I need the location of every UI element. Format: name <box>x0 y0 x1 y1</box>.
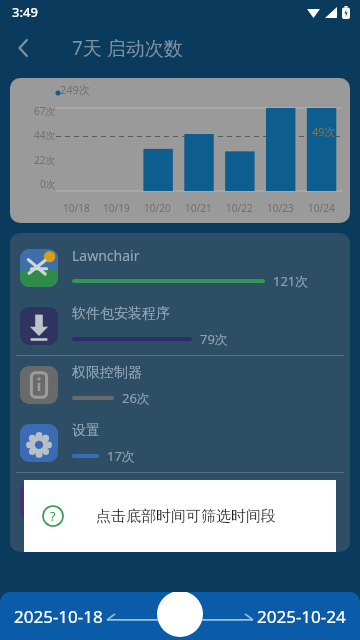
staticText: 249次 <box>60 82 90 97</box>
button[interactable]: 设置 <box>10 414 350 472</box>
staticText: 10/23 <box>267 201 294 215</box>
staticText: 7天 启动次数 <box>72 35 183 61</box>
staticText: 79次 <box>200 330 228 348</box>
staticText: 10/22 <box>226 201 253 215</box>
staticText: Lawnchair <box>72 246 140 265</box>
button[interactable]: Date range <box>103 592 257 640</box>
button[interactable]: 2025-10-24 <box>257 605 346 628</box>
staticText: 10/24 <box>308 201 335 215</box>
staticText: 10/18 <box>63 201 90 215</box>
button[interactable]: 软件包安装程序 <box>10 297 350 355</box>
staticText: 17次 <box>107 447 135 465</box>
staticText: 10/19 <box>103 201 130 215</box>
staticText: 2025-10-24 <box>257 605 346 628</box>
button[interactable]: Lawnchair <box>10 239 350 297</box>
button[interactable]: Back <box>0 24 48 72</box>
staticText: 22次 <box>34 153 56 167</box>
staticText: ? <box>50 507 56 525</box>
staticText: 0次 <box>40 177 56 191</box>
staticText: 设置 <box>72 422 100 440</box>
button[interactable] <box>10 473 350 531</box>
staticText: 44次 <box>34 128 56 142</box>
staticText: 10/20 <box>144 201 171 215</box>
button[interactable]: ? <box>24 480 336 552</box>
staticText: 67次 <box>34 104 56 118</box>
staticText: 2025-10-18 <box>14 605 103 628</box>
staticText: 启动次数 <box>158 603 202 617</box>
staticText: 26次 <box>122 389 150 407</box>
button[interactable]: 2025-10-18 <box>14 605 103 628</box>
staticText: 121次 <box>273 272 309 290</box>
button[interactable]: 权限控制器 <box>10 356 350 414</box>
staticText: 软件包安装程序 <box>72 305 170 323</box>
staticText: 49次 <box>312 124 336 139</box>
button[interactable]: 249次 <box>10 78 350 223</box>
staticText: 10/21 <box>185 201 212 215</box>
staticText: 3:49 <box>12 3 38 21</box>
staticText: 点击底部时间可筛选时间段 <box>96 507 276 526</box>
staticText: 权限控制器 <box>72 364 142 382</box>
